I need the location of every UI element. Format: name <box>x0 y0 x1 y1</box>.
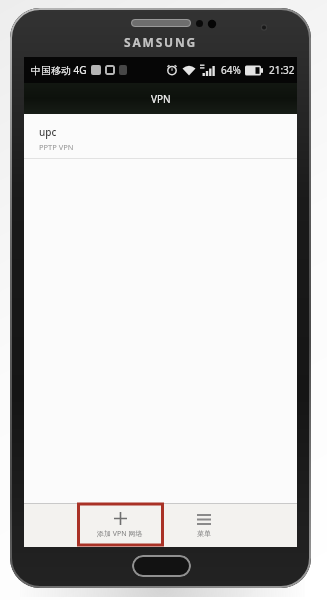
button[interactable]: 菜单 <box>162 504 246 547</box>
staticText: VPN <box>151 92 171 106</box>
button[interactable] <box>132 555 191 577</box>
staticText: PPTP VPN <box>39 142 74 152</box>
staticText: 21:32 <box>269 63 295 77</box>
button[interactable]: 添加 VPN 网络 <box>78 504 162 547</box>
staticText: SAMSUNG <box>124 34 197 50</box>
staticText: 菜单 <box>197 529 211 538</box>
button[interactable]: upc <box>24 114 297 152</box>
staticText: upc <box>39 125 57 139</box>
staticText: 添加 VPN 网络 <box>97 529 143 539</box>
staticText: 64% <box>221 63 241 77</box>
staticText: 中国移动 4G <box>31 63 87 77</box>
